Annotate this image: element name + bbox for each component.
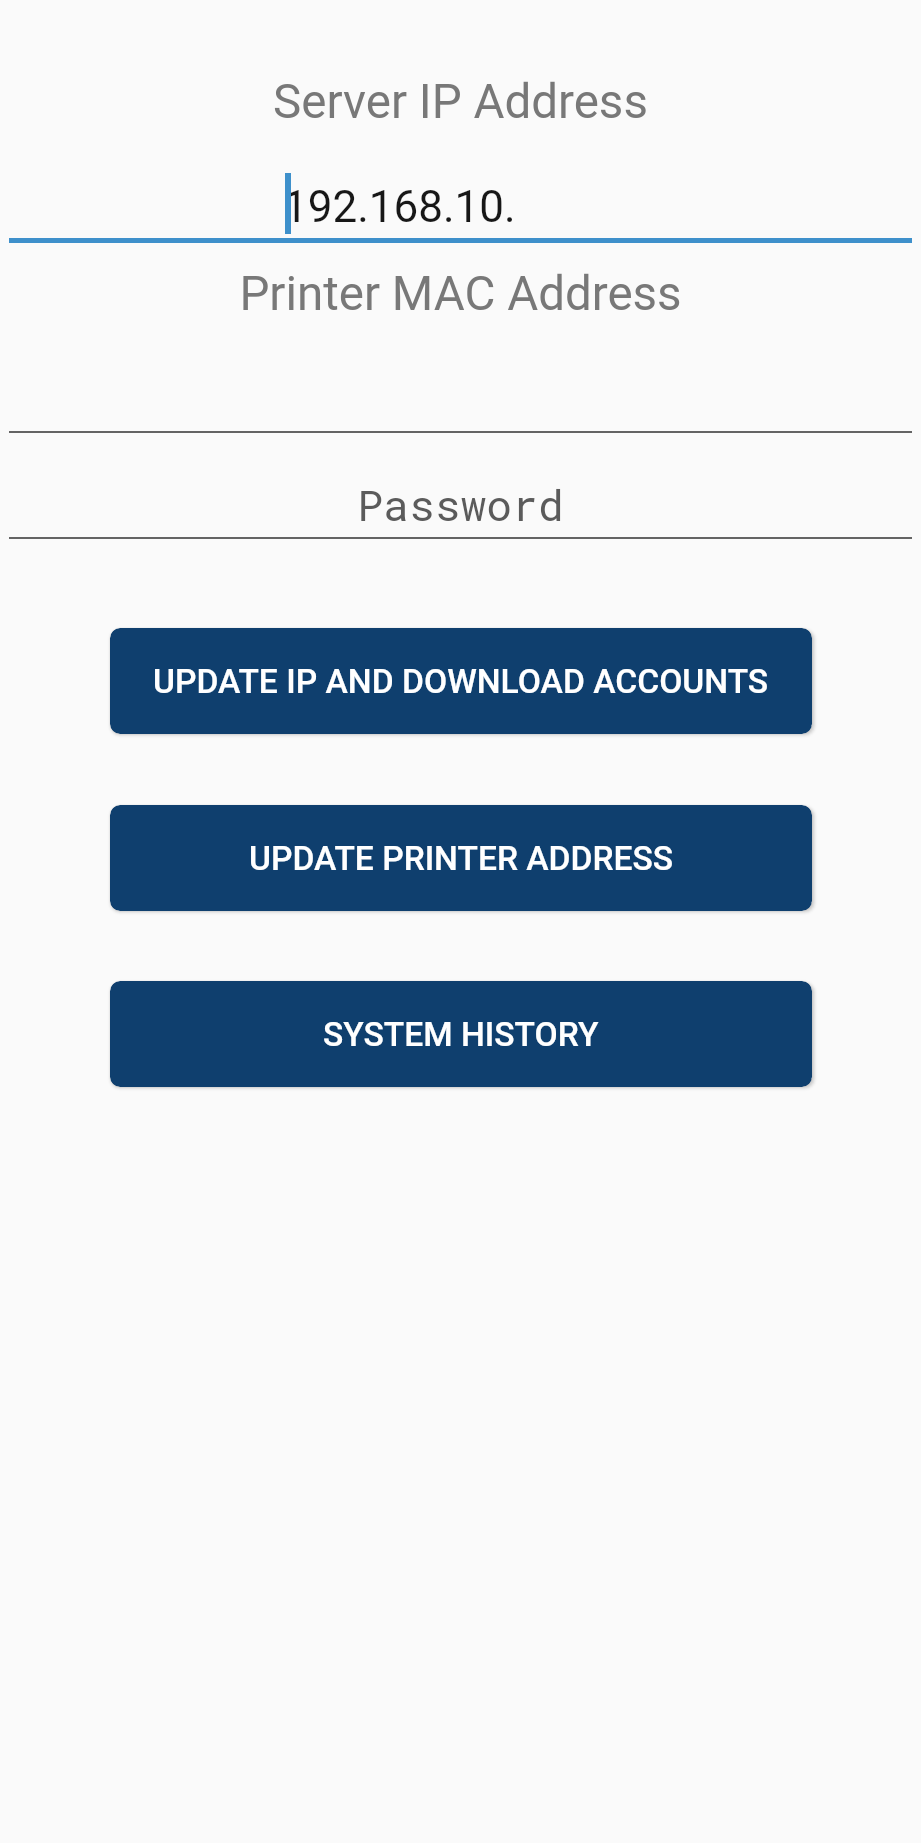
button[interactable]	[9, 437, 912, 539]
staticText: UPDATE PRINTER ADDRESS	[249, 839, 674, 878]
button[interactable]: SYSTEM HISTORY	[110, 981, 812, 1087]
staticText: 192.168.10.	[283, 181, 516, 233]
button[interactable]: UPDATE PRINTER ADDRESS	[110, 805, 812, 911]
button[interactable]	[9, 247, 912, 433]
button[interactable]: UPDATE IP AND DOWNLOAD ACCOUNTS	[110, 628, 812, 734]
staticText: Server IP Address	[0, 74, 921, 130]
staticText: Printer MAC Address	[0, 266, 921, 322]
staticText: UPDATE IP AND DOWNLOAD ACCOUNTS	[153, 662, 769, 701]
staticText: Password	[0, 476, 921, 533]
staticText: SYSTEM HISTORY	[323, 1015, 599, 1054]
button[interactable]	[9, 40, 912, 243]
